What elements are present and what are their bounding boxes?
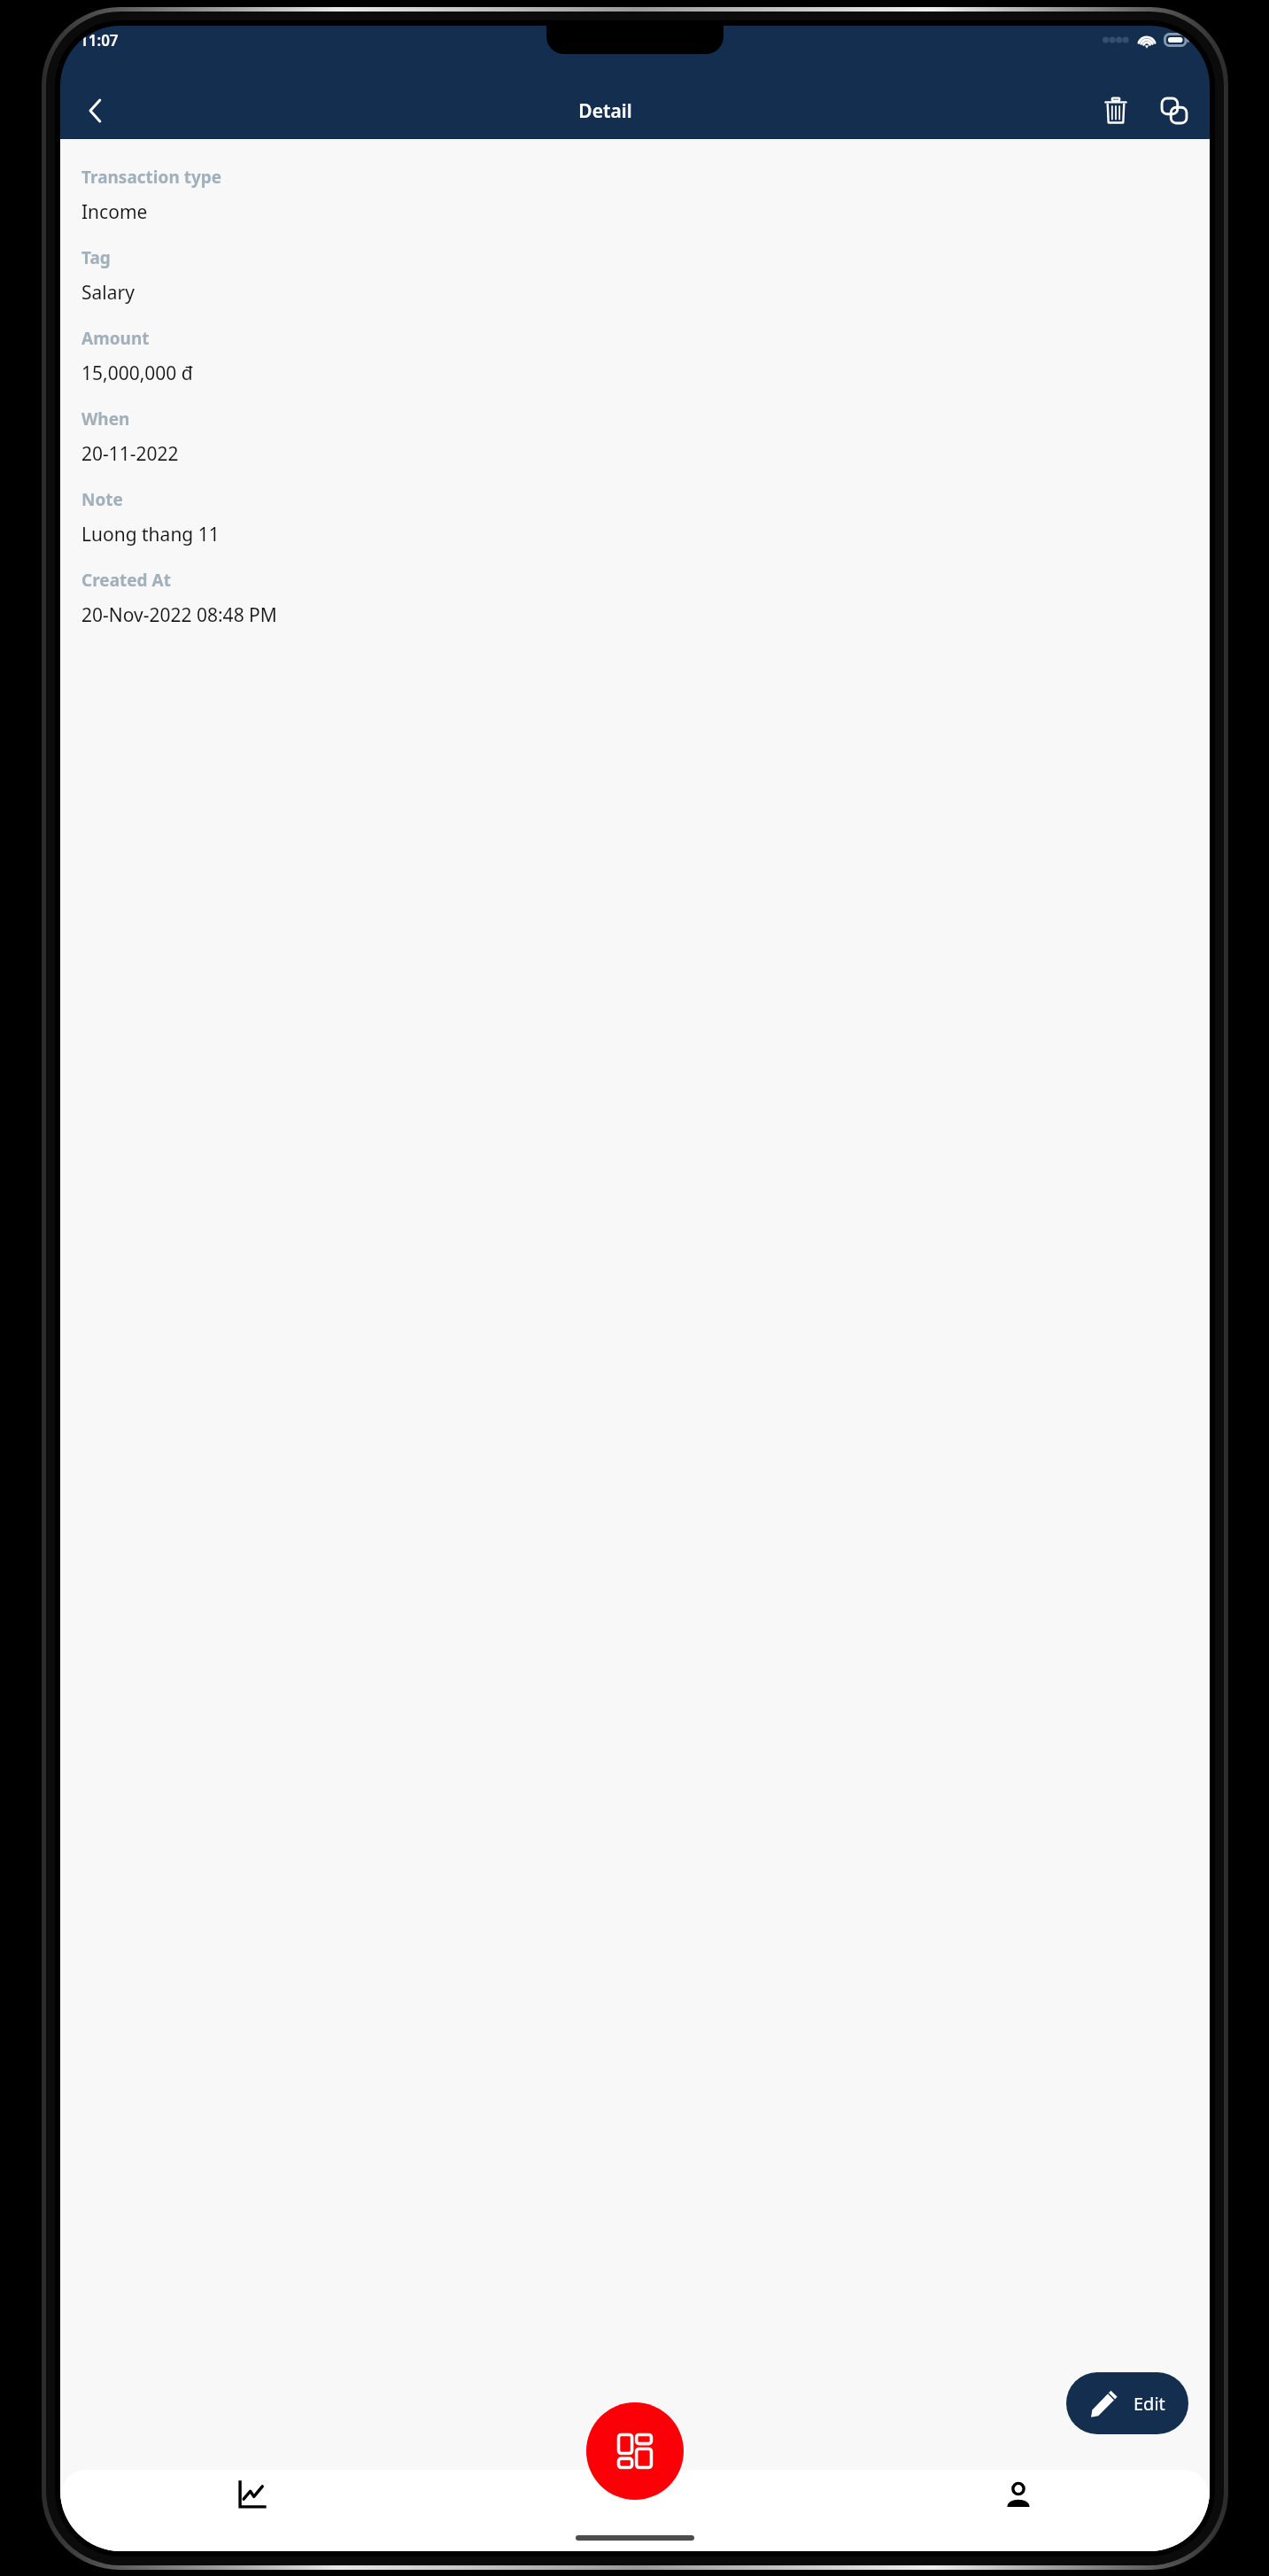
button[interactable]: Delete	[1093, 88, 1139, 134]
staticText: Tag	[81, 246, 111, 269]
button[interactable]: Statistics	[60, 2470, 443, 2521]
staticText: Income	[81, 199, 148, 225]
button[interactable]: Dashboard	[586, 2402, 684, 2500]
button[interactable]: Edit	[1066, 2372, 1188, 2434]
staticText: Edit	[1134, 2392, 1165, 2416]
staticText: Luong thang 11	[81, 522, 220, 547]
button[interactable]: Profile	[826, 2470, 1210, 2521]
button[interactable]: Copy link	[1151, 88, 1197, 134]
staticText: Transaction type	[81, 166, 222, 189]
staticText: Note	[81, 488, 123, 511]
staticText: Amount	[81, 327, 150, 350]
staticText: Salary	[81, 280, 135, 306]
staticText: 15,000,000 đ	[81, 361, 193, 386]
staticText: 11:07	[80, 30, 119, 50]
staticText: 20-11-2022	[81, 441, 179, 467]
button[interactable]: Back	[73, 88, 119, 134]
staticText: Detail	[578, 98, 632, 124]
staticText: When	[81, 407, 130, 431]
staticText: Created At	[81, 569, 171, 592]
staticText: 20-Nov-2022 08:48 PM	[81, 602, 277, 628]
